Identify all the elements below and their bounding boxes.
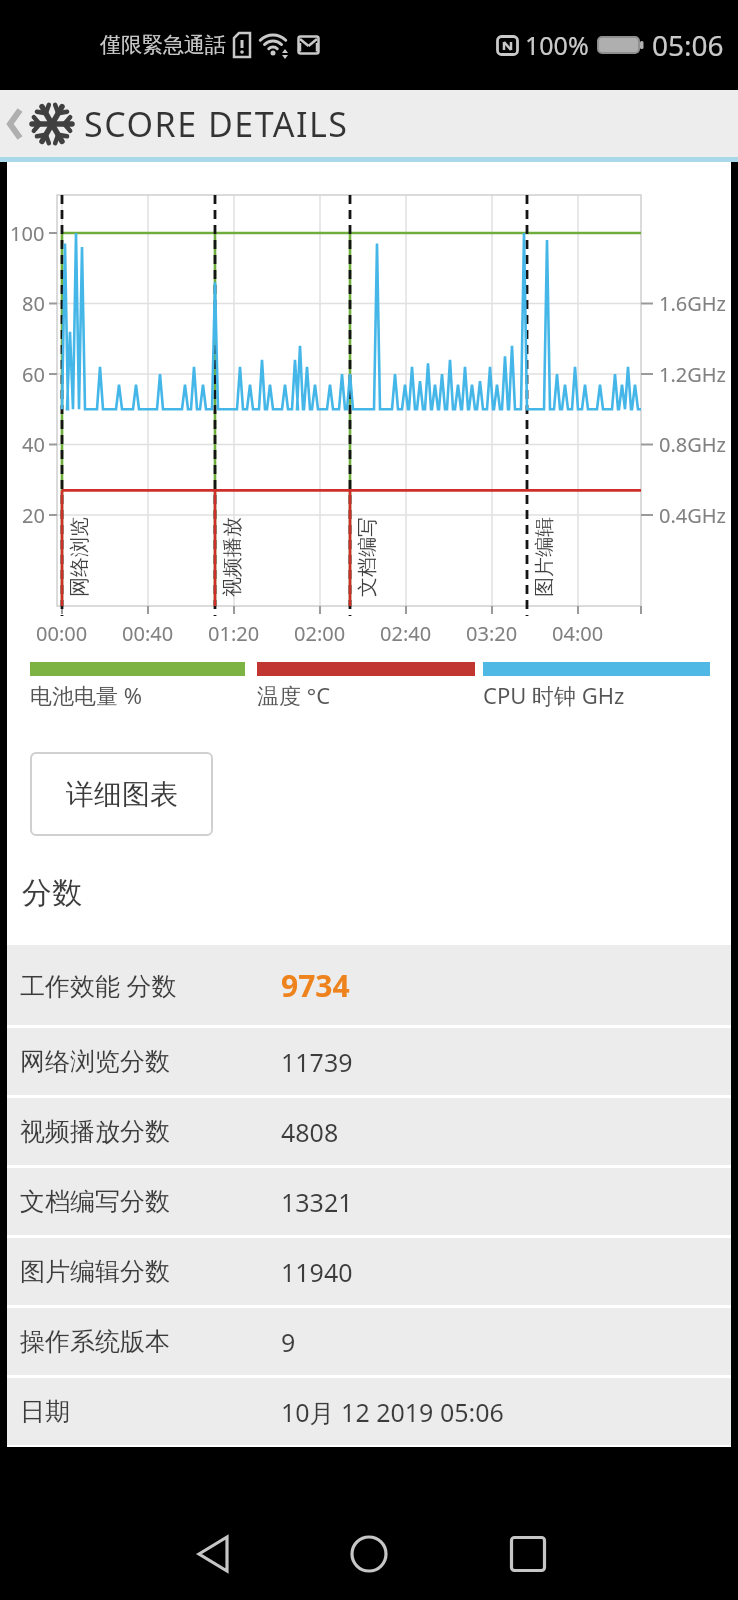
- staticText: 僅限緊急通話: [100, 32, 226, 58]
- staticText: 工作效能 分数: [20, 968, 267, 1002]
- button[interactable]: 操作系统版本: [7, 1308, 731, 1375]
- staticText: 10月 12 2019 05:06: [281, 1395, 504, 1429]
- staticText: 100%: [525, 28, 589, 62]
- staticText: 日期: [20, 1396, 267, 1427]
- staticText: CPU 时钟 GHz: [483, 680, 625, 710]
- button[interactable]: [183, 1524, 243, 1584]
- staticText: SCORE DETAILS: [84, 101, 349, 147]
- button[interactable]: 工作效能 分数: [7, 945, 731, 1025]
- button[interactable]: 图片编辑分数: [7, 1238, 731, 1305]
- staticText: 9: [281, 1325, 296, 1359]
- staticText: 05:06: [652, 26, 724, 64]
- staticText: 操作系统版本: [20, 1326, 267, 1357]
- button[interactable]: [498, 1524, 558, 1584]
- staticText: 13321: [281, 1185, 353, 1219]
- staticText: 温度 °C: [257, 680, 331, 710]
- staticText: 网络浏览分数: [20, 1046, 267, 1077]
- button[interactable]: 日期: [7, 1378, 731, 1445]
- staticText: 图片编辑分数: [20, 1256, 267, 1287]
- staticText: 视频播放分数: [20, 1116, 267, 1147]
- button[interactable]: 视频播放分数: [7, 1098, 731, 1165]
- staticText: 4808: [281, 1115, 339, 1149]
- staticText: 分数: [22, 874, 82, 912]
- button[interactable]: 网络浏览分数: [7, 1028, 731, 1095]
- staticText: 详细图表: [66, 777, 178, 812]
- button[interactable]: [339, 1524, 399, 1584]
- staticText: 文档编写分数: [20, 1186, 267, 1217]
- button[interactable]: 文档编写分数: [7, 1168, 731, 1235]
- button[interactable]: 详细图表: [30, 752, 213, 836]
- button[interactable]: [0, 90, 30, 157]
- staticText: 9734: [281, 965, 350, 1006]
- staticText: 11940: [281, 1255, 353, 1289]
- staticText: 11739: [281, 1045, 353, 1079]
- staticText: 电池电量 %: [30, 680, 143, 710]
